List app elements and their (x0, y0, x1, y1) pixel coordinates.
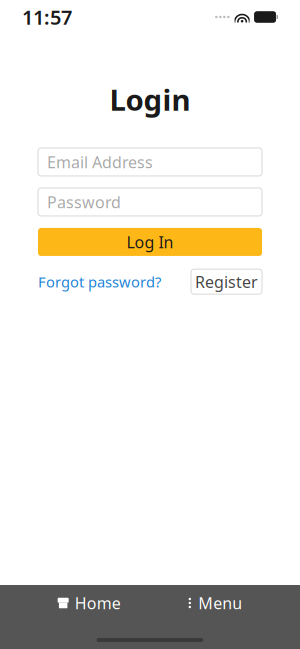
staticText: Menu (198, 592, 242, 614)
button[interactable]: Home (48, 584, 131, 622)
staticText: Home (75, 592, 121, 614)
button[interactable]: Log In (38, 228, 262, 256)
button[interactable]: Menu (178, 584, 252, 622)
staticText: Forgot password? (38, 272, 161, 291)
staticText: Password (47, 191, 121, 212)
staticText: 11:57 (22, 4, 72, 30)
button[interactable]: Register (191, 269, 262, 294)
button[interactable]: Forgot password? (38, 266, 169, 297)
staticText: Register (195, 271, 258, 292)
button[interactable]: Email Address (38, 148, 262, 176)
staticText: Email Address (47, 151, 153, 172)
staticText: Login (109, 80, 190, 119)
staticText: Log In (126, 231, 173, 252)
button[interactable]: Password (38, 188, 262, 216)
